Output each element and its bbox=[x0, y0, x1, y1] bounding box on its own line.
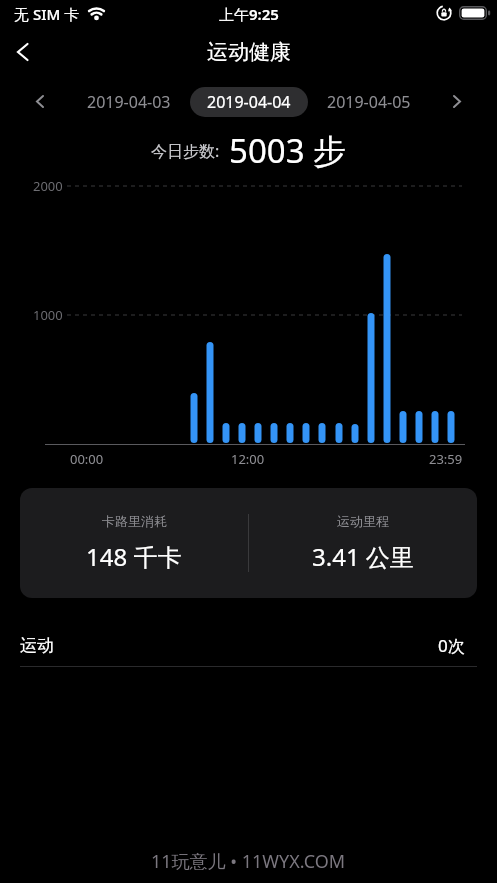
staticText: 2019-04-04 bbox=[207, 91, 291, 113]
button[interactable] bbox=[2, 36, 42, 68]
staticText: 运动健康 bbox=[207, 39, 291, 65]
staticText: 00:00 bbox=[70, 450, 104, 468]
staticText: 运动 bbox=[20, 635, 54, 656]
staticText: 2019-04-03 bbox=[87, 91, 171, 113]
button[interactable]: 2019-04-04 bbox=[190, 87, 308, 117]
button[interactable] bbox=[445, 88, 469, 114]
staticText: 0次 bbox=[438, 634, 465, 657]
staticText: 2000 bbox=[33, 177, 63, 195]
staticText: 运动里程 bbox=[337, 513, 389, 529]
button[interactable]: 运动 bbox=[0, 626, 497, 664]
button[interactable]: 运动里程 bbox=[249, 488, 477, 598]
staticText: 148 千卡 bbox=[86, 540, 182, 573]
button[interactable]: 2019-04-03 bbox=[87, 91, 171, 113]
staticText: 无 SIM 卡 bbox=[14, 4, 80, 24]
staticText: 今日步数: bbox=[151, 140, 220, 162]
staticText: 12:00 bbox=[231, 450, 265, 468]
staticText: 23:59 bbox=[429, 450, 463, 468]
staticText: 卡路里消耗 bbox=[102, 513, 167, 529]
staticText: 3.41 公里 bbox=[312, 540, 414, 573]
staticText: 5003 步 bbox=[229, 128, 347, 173]
button[interactable] bbox=[28, 88, 52, 114]
button[interactable]: 卡路里消耗 bbox=[20, 488, 248, 598]
staticText: 11玩意儿 • 11WYX.COM bbox=[151, 849, 346, 874]
staticText: 1000 bbox=[33, 306, 63, 324]
staticText: 2019-04-05 bbox=[327, 91, 411, 113]
button[interactable]: 2019-04-05 bbox=[327, 91, 411, 113]
staticText: 上午9:25 bbox=[219, 4, 279, 24]
